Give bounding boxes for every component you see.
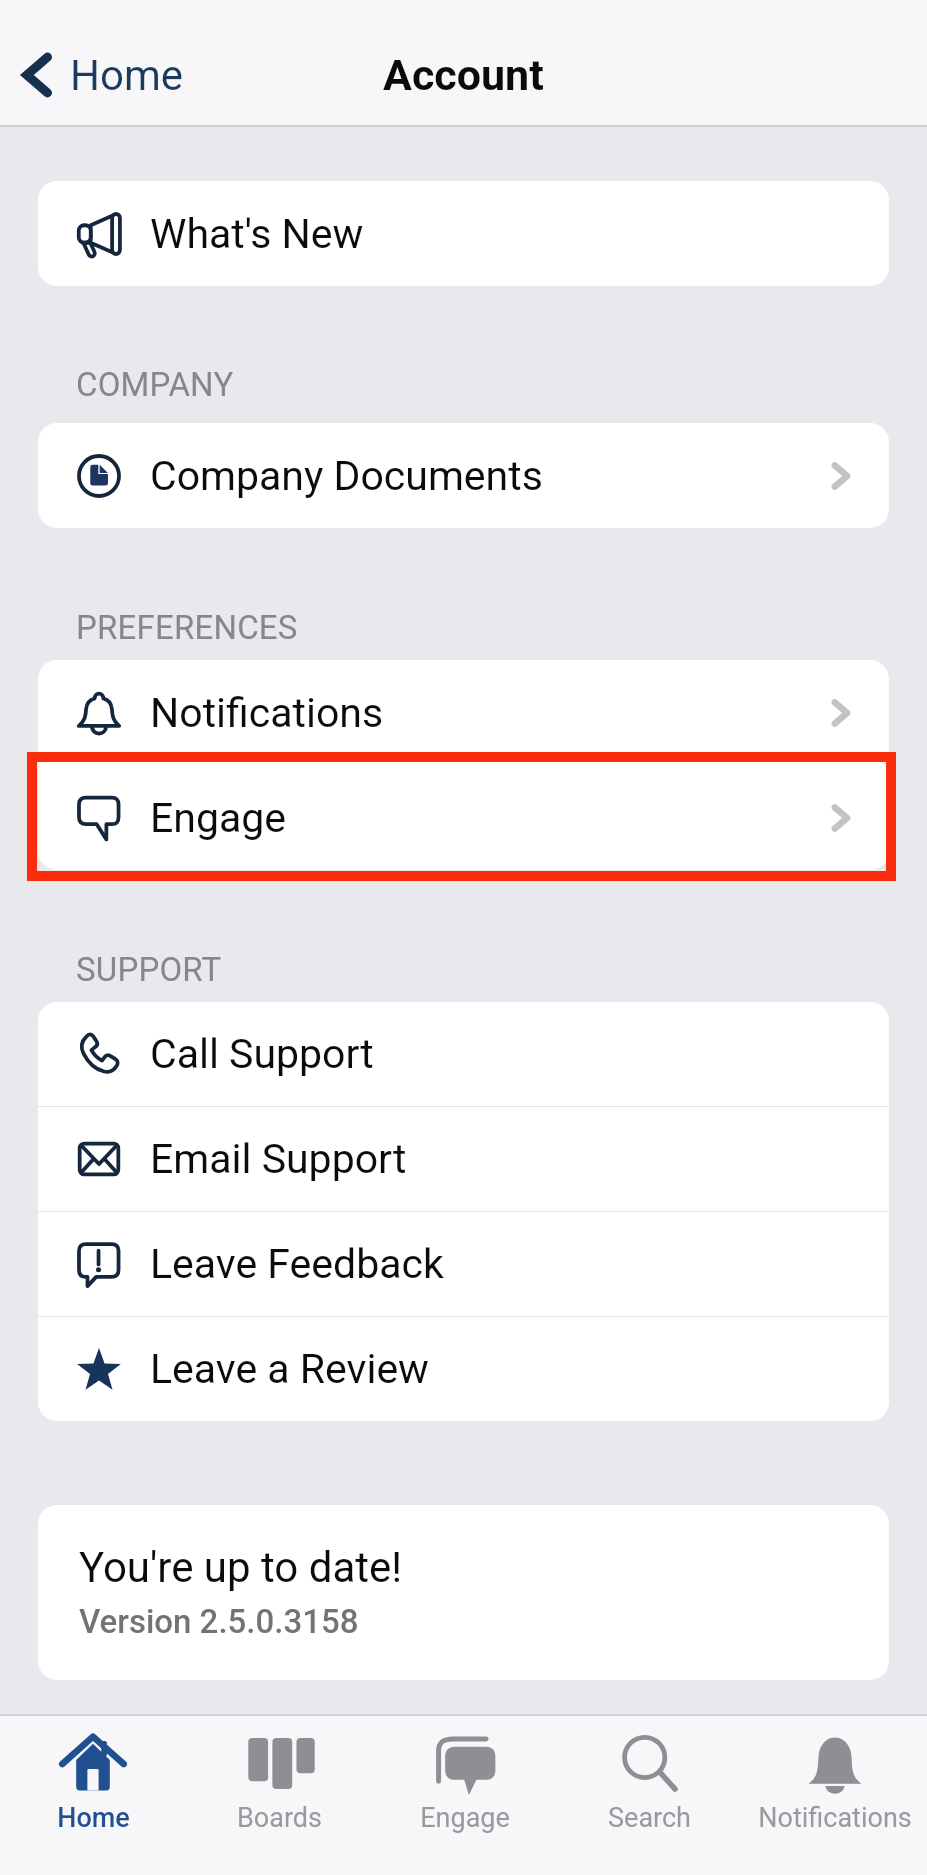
staticText: Account	[383, 50, 544, 100]
button[interactable]: Company Documents	[38, 423, 889, 528]
button[interactable]: Boards	[186, 1716, 372, 1875]
staticText: Engage	[150, 794, 287, 842]
staticText: Home	[70, 51, 184, 100]
staticText: COMPANY	[76, 365, 234, 404]
button[interactable]: Home	[0, 1716, 186, 1875]
staticText: Email Support	[150, 1135, 407, 1183]
staticText: Search	[608, 1802, 691, 1834]
staticText: Engage	[420, 1802, 510, 1834]
button[interactable]: Back	[10, 47, 184, 103]
staticText: SUPPORT	[76, 950, 222, 989]
staticText: What's New	[150, 210, 364, 258]
button[interactable]: Notifications	[38, 660, 889, 765]
button[interactable]: What's New	[38, 181, 889, 286]
staticText: Boards	[237, 1802, 322, 1834]
button[interactable]: Search	[557, 1716, 742, 1875]
staticText: Call Support	[150, 1030, 374, 1078]
staticText: Company Documents	[150, 452, 543, 500]
staticText: Notifications	[150, 689, 384, 737]
button[interactable]: Email Support	[38, 1107, 889, 1211]
staticText: Leave Feedback	[150, 1240, 444, 1288]
button[interactable]: You're up to date!	[38, 1505, 889, 1680]
staticText: Leave a Review	[150, 1345, 429, 1393]
button[interactable]: Engage	[372, 1716, 557, 1875]
button[interactable]: Leave Feedback	[38, 1212, 889, 1316]
staticText: You're up to date!	[79, 1543, 403, 1592]
button[interactable]: Call Support	[38, 1002, 889, 1106]
staticText: PREFERENCES	[76, 608, 298, 647]
staticText: Version 2.5.0.3158	[79, 1602, 359, 1641]
staticText: Notifications	[758, 1802, 912, 1834]
button[interactable]: Engage	[38, 765, 889, 870]
staticText: Home	[57, 1802, 130, 1834]
button[interactable]: Leave a Review	[38, 1317, 889, 1421]
other: Back	[10, 47, 66, 103]
button[interactable]: Notifications	[742, 1716, 927, 1875]
